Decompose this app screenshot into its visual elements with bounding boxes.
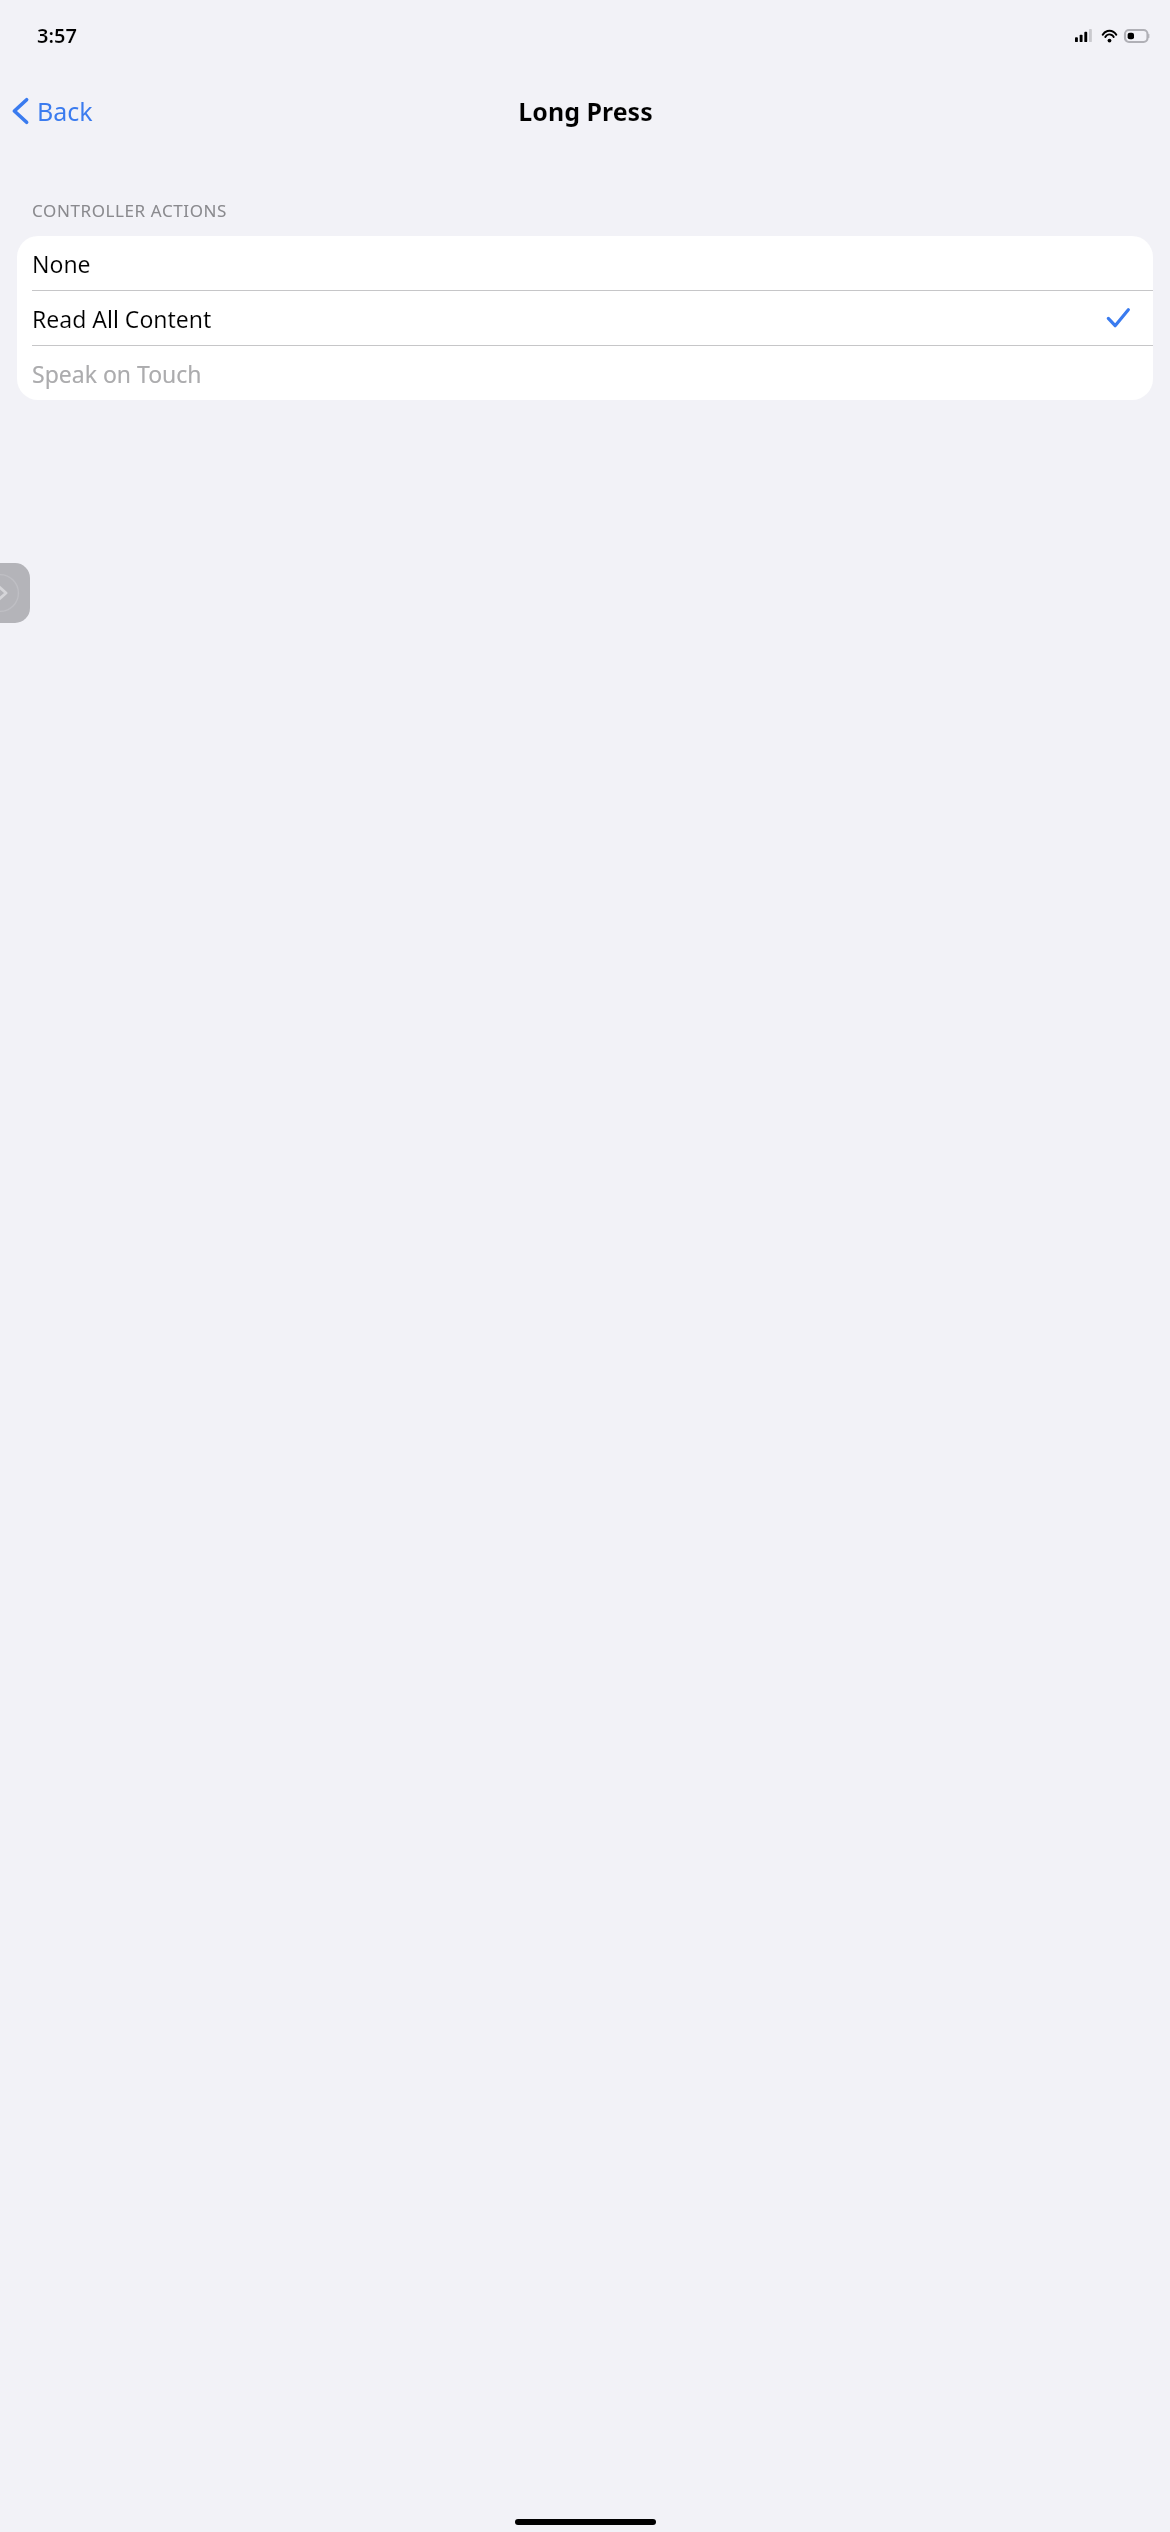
staticText: Read All Content [32,303,212,334]
staticText: 3:57 [37,22,77,49]
staticText: Back [37,94,93,128]
button[interactable]: Speak on Touch [17,346,1153,400]
button[interactable]: AssistiveTouch [0,563,30,623]
button[interactable]: Back [0,81,107,141]
staticText: None [32,248,91,279]
button[interactable]: None [17,236,1153,290]
staticText: CONTROLLER ACTIONS [32,199,227,222]
staticText: Speak on Touch [32,358,202,389]
staticText: Long Press [518,94,653,128]
button[interactable]: Read All Content [17,291,1153,345]
